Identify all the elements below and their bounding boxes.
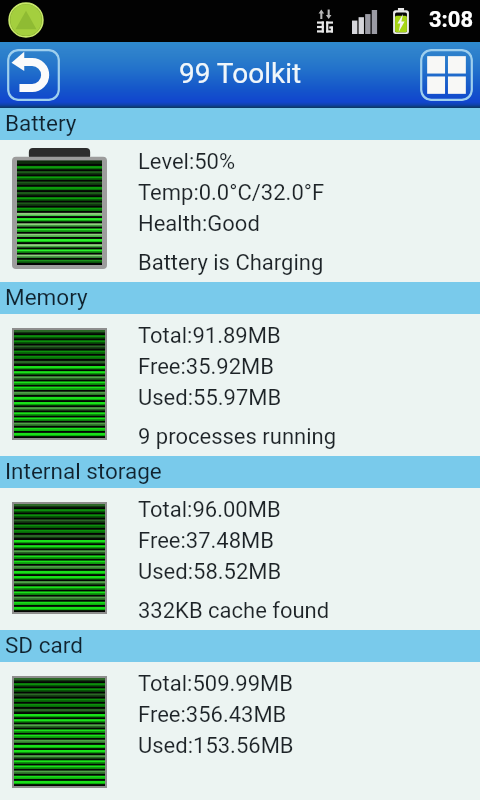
staticText: SD card — [5, 632, 83, 658]
button[interactable]: Back — [7, 49, 60, 101]
staticText: Total:91.89MB — [138, 323, 281, 349]
staticText: Memory — [5, 284, 88, 310]
staticText: Free:37.48MB — [138, 528, 274, 554]
button[interactable]: Total:509.99MB — [0, 662, 480, 800]
staticText: Free:35.92MB — [138, 354, 274, 380]
staticText: Internal storage — [5, 458, 162, 484]
staticText: Temp:0.0°C/32.0°F — [138, 180, 325, 206]
staticText: Level:50% — [138, 149, 236, 175]
staticText: Free:356.43MB — [138, 702, 287, 728]
staticText: Battery is Charging — [138, 250, 324, 276]
staticText: 99 Toolkit — [179, 57, 302, 90]
button[interactable]: Memory — [0, 282, 480, 314]
staticText: Health:Good — [138, 211, 260, 237]
staticText: Used:55.97MB — [138, 385, 282, 411]
button[interactable]: Battery — [0, 108, 480, 140]
staticText: 332KB cache found — [138, 598, 330, 624]
staticText: Battery — [5, 110, 77, 136]
staticText: 9 processes running — [138, 424, 337, 450]
staticText: Total:96.00MB — [138, 497, 281, 523]
staticText: 3:08 — [429, 7, 474, 33]
staticText: Used:58.52MB — [138, 559, 282, 585]
button[interactable]: Total:91.89MB — [0, 314, 480, 456]
button[interactable]: Total:96.00MB — [0, 488, 480, 630]
staticText: Total:509.99MB — [138, 671, 293, 697]
button[interactable]: SD card — [0, 630, 480, 662]
button[interactable]: Level:50% — [0, 140, 480, 282]
button[interactable]: Internal storage — [0, 456, 480, 488]
staticText: Used:153.56MB — [138, 733, 294, 759]
button[interactable]: Grid view — [420, 49, 473, 101]
